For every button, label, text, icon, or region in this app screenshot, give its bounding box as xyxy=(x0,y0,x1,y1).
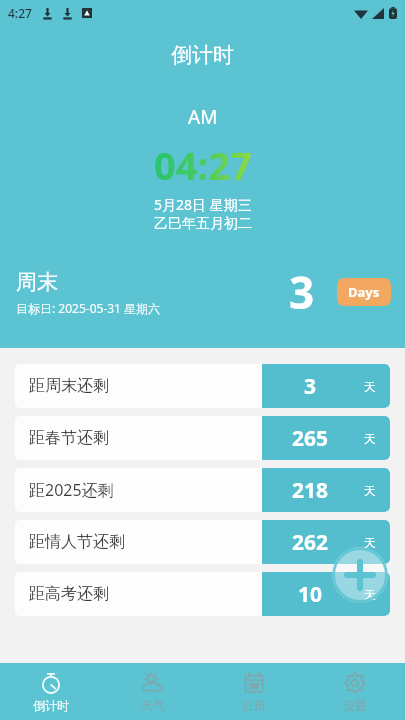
button[interactable]: 10 xyxy=(15,572,390,616)
staticText: 距情人节还剩 xyxy=(29,532,125,552)
staticText: 距春节还剩 xyxy=(29,428,109,448)
staticText: 周末 xyxy=(16,269,58,295)
button[interactable]: 262 xyxy=(15,520,390,564)
staticText: 5月28日 星期三 xyxy=(154,195,252,214)
button[interactable]: 倒计时 xyxy=(0,665,102,719)
staticText: 04:27 xyxy=(154,139,252,191)
button[interactable]: Add countdown xyxy=(332,547,388,603)
staticText: 3 xyxy=(289,262,315,322)
button[interactable]: 218 xyxy=(15,468,390,512)
staticText: 距高考还剩 xyxy=(29,584,109,604)
staticText: 10 xyxy=(298,580,323,609)
staticText: 设置 xyxy=(343,698,367,713)
staticText: 日历 xyxy=(242,698,266,713)
staticText: 倒计时 xyxy=(33,698,69,713)
staticText: 天 xyxy=(364,587,376,602)
staticText: 倒计时 xyxy=(171,42,234,68)
staticText: 天 xyxy=(364,379,376,394)
staticText: 265 xyxy=(292,424,329,453)
staticText: 距周末还剩 xyxy=(29,376,109,396)
staticText: 262 xyxy=(292,528,329,557)
staticText: 天 xyxy=(364,483,376,498)
button[interactable]: 265 xyxy=(15,416,390,460)
button[interactable]: 3 xyxy=(15,364,390,408)
button[interactable]: 周末 xyxy=(16,262,391,322)
button[interactable]: 设置 xyxy=(304,665,405,719)
staticText: Days xyxy=(348,283,380,301)
staticText: 天 xyxy=(364,535,376,550)
button[interactable]: 天气 xyxy=(102,665,203,719)
staticText: 目标日: 2025-05-31 星期六 xyxy=(16,300,161,316)
staticText: 3 xyxy=(304,372,317,401)
staticText: 天 xyxy=(364,431,376,446)
staticText: 距2025还剩 xyxy=(29,479,114,501)
button[interactable]: 日历 xyxy=(203,665,304,719)
staticText: 天气 xyxy=(141,698,165,713)
staticText: 218 xyxy=(292,476,329,505)
staticText: 4:27 xyxy=(8,5,32,21)
staticText: 乙巳年五月初二 xyxy=(154,215,252,233)
staticText: AM xyxy=(188,104,218,130)
